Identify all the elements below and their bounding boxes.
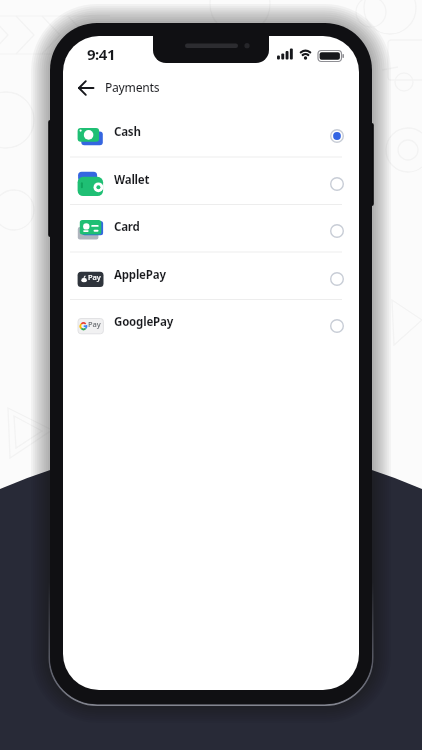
staticText: Payments — [105, 79, 160, 95]
button[interactable]: ApplePay — [70, 260, 352, 300]
staticText: GooglePay — [114, 314, 174, 330]
button[interactable]: Payments — [70, 76, 190, 100]
staticText: Pay — [88, 319, 101, 329]
button[interactable]: Cash — [70, 117, 352, 157]
staticText: 9:41 — [87, 44, 115, 64]
staticText: ApplePay — [114, 267, 166, 283]
staticText: Cash — [114, 124, 141, 140]
staticText: Card — [114, 219, 140, 235]
button[interactable]: Card — [70, 212, 352, 252]
button[interactable]: Wallet — [70, 165, 352, 205]
button[interactable]: GooglePay — [70, 307, 352, 347]
staticText: Wallet — [114, 172, 150, 188]
staticText: Pay — [88, 272, 101, 282]
